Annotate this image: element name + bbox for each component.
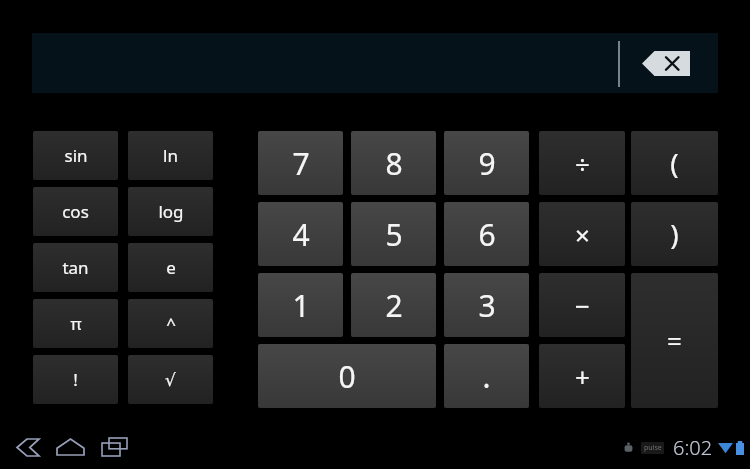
button[interactable]: π (33, 299, 118, 348)
staticText: cos (62, 200, 89, 223)
staticText: 1 (292, 285, 310, 326)
button[interactable]: Decimal point (444, 344, 529, 408)
button[interactable]: 6 (444, 202, 529, 266)
button[interactable]: Home (48, 425, 92, 469)
button[interactable]: Divide (539, 131, 625, 195)
button[interactable]: pulse (622, 434, 744, 461)
staticText: . (482, 356, 491, 397)
button[interactable]: Multiply (539, 202, 625, 266)
staticText: + (575, 359, 590, 394)
staticText: ÷ (575, 146, 590, 181)
staticText: − (575, 288, 590, 323)
staticText: 2 (385, 285, 403, 326)
button[interactable]: 9 (444, 131, 529, 195)
staticText: π (70, 312, 82, 335)
button[interactable]: tan (33, 243, 118, 292)
button[interactable]: Delete (32, 33, 718, 93)
staticText: ( (670, 144, 679, 182)
staticText: 9 (478, 143, 496, 184)
button[interactable]: √ (128, 355, 213, 404)
staticText: 4 (292, 214, 310, 255)
staticText: ln (163, 144, 178, 167)
staticText: 3 (478, 285, 496, 326)
staticText: 7 (292, 143, 310, 184)
staticText: 5 (385, 214, 403, 255)
button[interactable]: 7 (258, 131, 343, 195)
staticText: = (667, 323, 682, 358)
staticText: e (166, 256, 176, 279)
button[interactable]: cos (33, 187, 118, 236)
button[interactable]: 5 (351, 202, 436, 266)
button[interactable]: 8 (351, 131, 436, 195)
staticText: 8 (385, 143, 403, 184)
button[interactable]: 1 (258, 273, 343, 337)
button[interactable]: Equals (631, 273, 718, 408)
button[interactable]: Back (6, 425, 50, 469)
button[interactable]: 4 (258, 202, 343, 266)
button[interactable]: 3 (444, 273, 529, 337)
button[interactable]: Close parenthesis (631, 202, 718, 266)
staticText: pulse (644, 443, 662, 453)
button[interactable]: 2 (351, 273, 436, 337)
staticText: 6 (478, 214, 496, 255)
button[interactable]: 0 (258, 344, 436, 408)
staticText: tan (62, 256, 89, 279)
staticText: ) (670, 215, 679, 253)
button[interactable]: Plus (539, 344, 625, 408)
button[interactable]: sin (33, 131, 118, 180)
button[interactable]: Minus (539, 273, 625, 337)
button[interactable]: ^ (128, 299, 213, 348)
button[interactable]: ln (128, 131, 213, 180)
staticText: ! (73, 368, 78, 391)
staticText: 6:02 (673, 434, 713, 461)
button[interactable]: Open parenthesis (631, 131, 718, 195)
button[interactable]: Delete (642, 51, 690, 76)
staticText: ^ (166, 312, 176, 335)
button[interactable]: e (128, 243, 213, 292)
button[interactable]: log (128, 187, 213, 236)
staticText: √ (165, 370, 176, 390)
button[interactable]: Recent apps (92, 425, 136, 469)
staticText: 0 (338, 356, 356, 397)
staticText: sin (64, 144, 88, 167)
button[interactable]: ! (33, 355, 118, 404)
staticText: × (575, 217, 590, 252)
staticText: log (158, 200, 184, 223)
